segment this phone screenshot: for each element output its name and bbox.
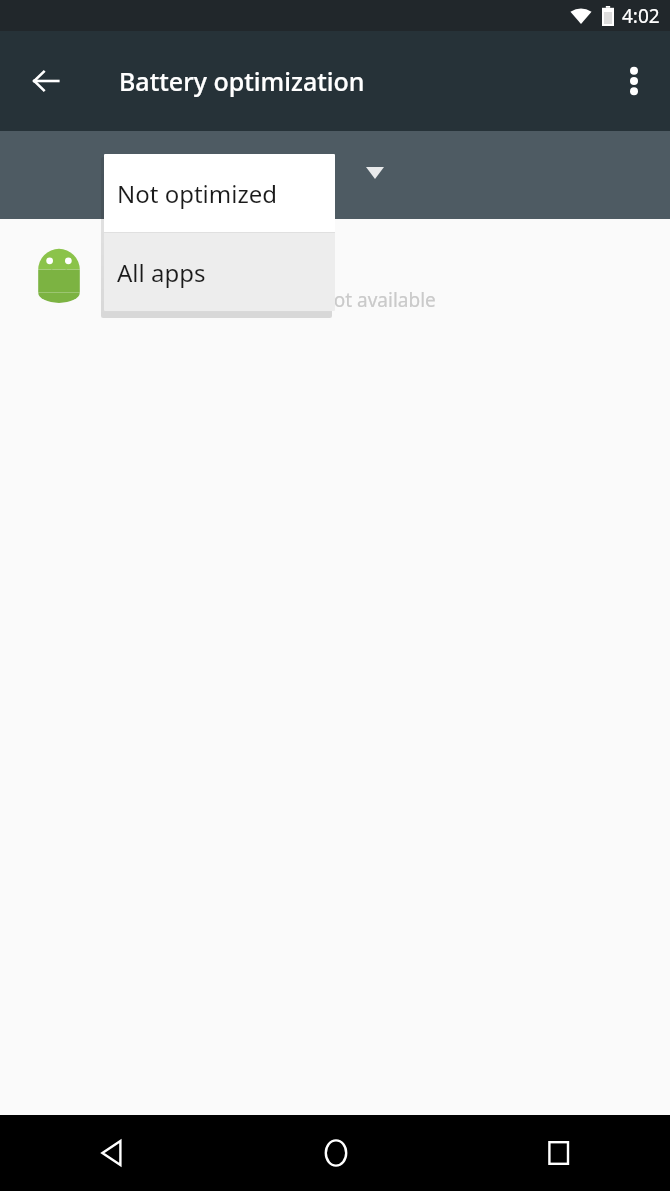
staticText: Not optimized xyxy=(117,177,278,210)
button[interactable] xyxy=(0,131,670,219)
staticText: 4:02 xyxy=(622,3,660,29)
button[interactable]: Recent apps xyxy=(447,1115,670,1191)
button[interactable]: Back xyxy=(0,1115,224,1191)
button[interactable]: Back xyxy=(18,53,74,109)
button[interactable]: All apps xyxy=(104,233,335,311)
staticText: Battery optimization xyxy=(119,64,365,98)
staticText: All apps xyxy=(117,256,206,289)
staticText: not available xyxy=(322,287,436,313)
button[interactable]: Home xyxy=(224,1115,447,1191)
button[interactable]: Not optimized xyxy=(104,154,335,232)
button[interactable]: More options xyxy=(606,53,662,109)
